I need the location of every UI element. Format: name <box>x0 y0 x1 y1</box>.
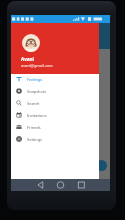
staticText: Feelings <box>27 77 43 82</box>
staticText: Invitations <box>27 113 47 118</box>
staticText: Settings <box>27 137 42 142</box>
staticText: Friends <box>27 125 41 130</box>
button[interactable]: Friends <box>11 122 99 134</box>
staticText: Snapshots <box>27 89 47 94</box>
staticText: Search <box>27 101 40 106</box>
button[interactable]: Feelings <box>11 74 99 86</box>
button[interactable]: Invitations <box>11 110 99 122</box>
staticText: avani@gmail.com <box>21 63 53 68</box>
button[interactable]: Settings <box>11 134 99 146</box>
staticText: Avani <box>21 56 34 62</box>
button[interactable]: Add <box>96 160 107 171</box>
button[interactable]: Search <box>11 98 99 110</box>
button[interactable]: Snapshots <box>11 86 99 98</box>
